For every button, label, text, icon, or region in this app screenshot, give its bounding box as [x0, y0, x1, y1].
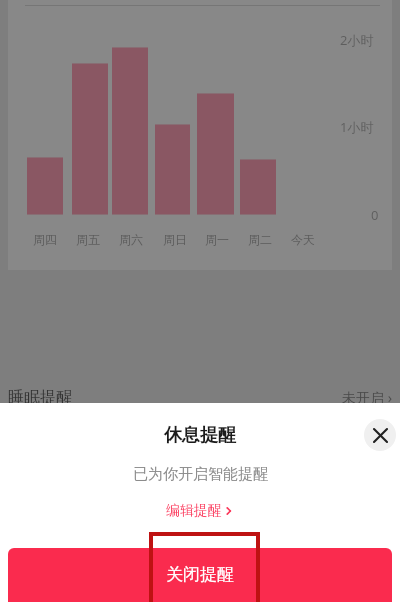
staticText: 周日 — [163, 232, 187, 247]
staticText: 0 — [371, 206, 379, 224]
staticText: 1小时 — [340, 118, 374, 136]
staticText: 休息提醒 — [164, 424, 236, 447]
button[interactable]: 睡眠提醒 — [0, 388, 400, 403]
staticText: 关闭提醒 — [166, 564, 234, 585]
staticText: 周六 — [119, 232, 143, 247]
staticText: 编辑提醒 — [166, 502, 222, 520]
button[interactable]: 编辑提醒 — [160, 500, 240, 522]
button[interactable]: 关闭 — [364, 419, 396, 451]
staticText: 睡眠提醒 — [8, 388, 72, 403]
staticText: 周二 — [248, 232, 272, 247]
staticText: 已为你开启智能提醒 — [133, 465, 268, 484]
staticText: 周一 — [205, 232, 229, 247]
staticText: 今天 — [291, 232, 315, 247]
staticText: 未开启 › — [342, 388, 392, 403]
staticText: 周四 — [33, 232, 57, 247]
staticText: 2小时 — [340, 31, 374, 49]
button[interactable]: 关闭提醒 — [8, 548, 392, 602]
staticText: 周五 — [76, 232, 100, 247]
